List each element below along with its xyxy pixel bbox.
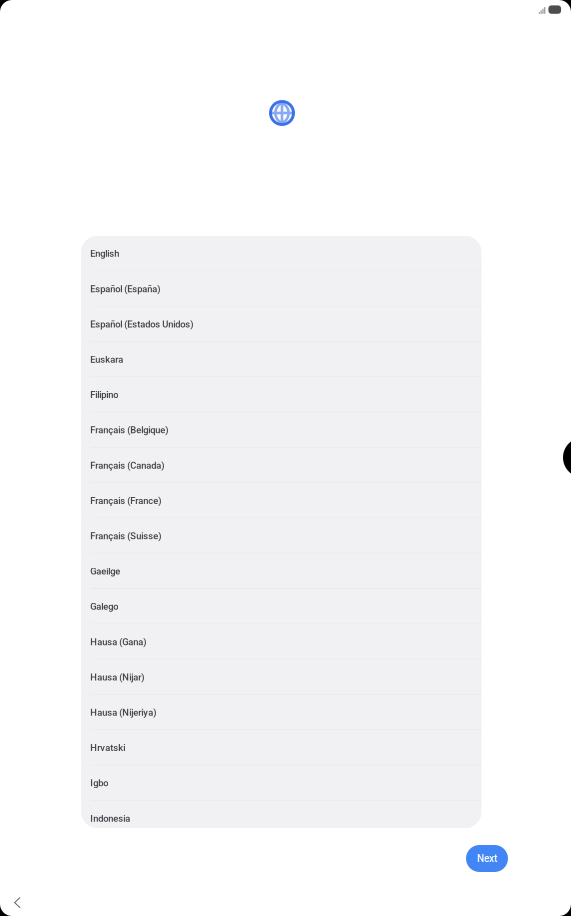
button[interactable]: Gaeilge bbox=[81, 554, 481, 589]
button[interactable]: Filipino bbox=[81, 377, 481, 412]
button[interactable]: Français (Canada) bbox=[81, 448, 481, 483]
button[interactable]: Back bbox=[14, 897, 21, 908]
button[interactable]: Español (Estados Unidos) bbox=[81, 307, 481, 342]
staticText: Filipino bbox=[90, 389, 118, 400]
button[interactable]: Hausa (Nijeriya) bbox=[81, 695, 481, 730]
staticText: Français (Suisse) bbox=[90, 531, 161, 541]
staticText: Next bbox=[477, 853, 497, 864]
staticText: Indonesia bbox=[90, 813, 130, 824]
button[interactable]: Hausa (Gana) bbox=[81, 624, 481, 660]
button[interactable]: Français (France) bbox=[81, 483, 481, 518]
staticText: Euskara bbox=[90, 354, 123, 365]
button[interactable]: Next bbox=[466, 845, 508, 872]
staticText: Hausa (Nijeriya) bbox=[90, 707, 156, 718]
button[interactable]: Indonesia bbox=[81, 801, 481, 836]
staticText: Français (France) bbox=[90, 495, 161, 506]
staticText: Français (Canada) bbox=[90, 460, 164, 471]
button[interactable]: Français (Suisse) bbox=[81, 518, 481, 554]
button[interactable]: English bbox=[81, 236, 481, 271]
button[interactable]: Français (Belgique) bbox=[81, 412, 481, 448]
staticText: Français (Belgique) bbox=[90, 425, 168, 436]
button[interactable]: Euskara bbox=[81, 342, 481, 377]
button[interactable]: Español (España) bbox=[81, 271, 481, 307]
button[interactable]: Galego bbox=[81, 589, 481, 624]
staticText: Hrvatski bbox=[90, 742, 125, 753]
staticText: Español (Estados Unidos) bbox=[90, 319, 193, 330]
staticText: Igbo bbox=[90, 778, 108, 789]
staticText: English bbox=[90, 248, 119, 259]
staticText: Galego bbox=[90, 601, 118, 612]
staticText: Gaeilge bbox=[90, 566, 120, 577]
button[interactable]: Hrvatski bbox=[81, 730, 481, 765]
staticText: Hausa (Nijar) bbox=[90, 672, 144, 683]
button[interactable]: Hausa (Nijar) bbox=[81, 660, 481, 695]
button[interactable]: Igbo bbox=[81, 765, 481, 801]
staticText: Hausa (Gana) bbox=[90, 636, 146, 647]
staticText: Español (España) bbox=[90, 283, 160, 294]
